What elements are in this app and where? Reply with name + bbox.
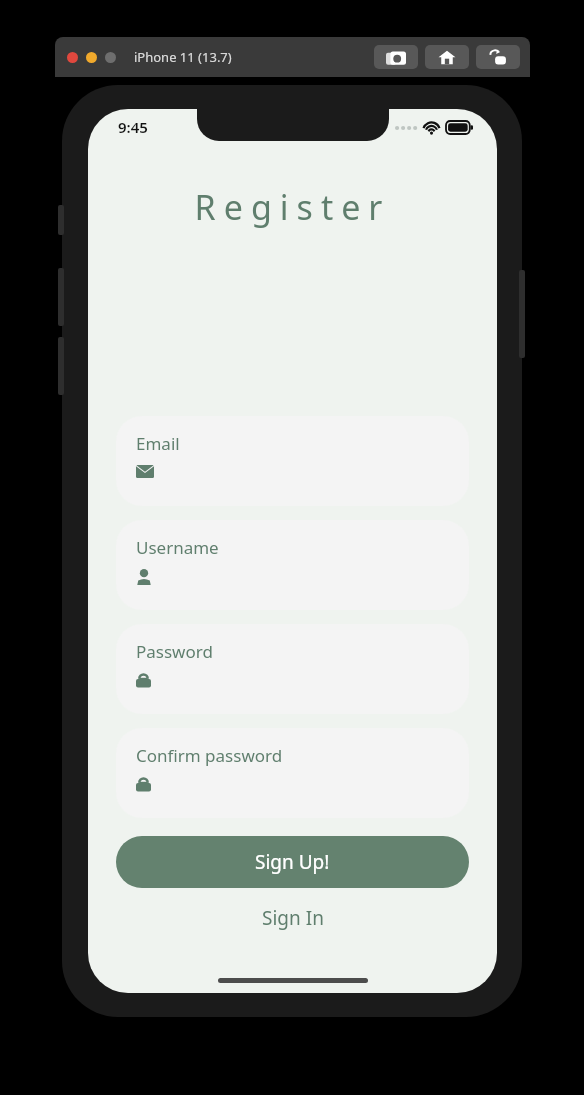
button[interactable]: Simulator control (374, 45, 418, 69)
button[interactable]: Password (116, 624, 469, 714)
staticText: Register (88, 184, 497, 230)
staticText: 9:45 (118, 117, 148, 137)
button[interactable]: Username (116, 520, 469, 610)
staticText: Sign Up! (255, 849, 330, 875)
staticText: Password (136, 640, 213, 663)
button[interactable]: Sign Up! (116, 836, 469, 888)
staticText: Confirm password (136, 744, 283, 767)
staticText: Username (136, 536, 219, 559)
button[interactable]: Simulator control (476, 45, 520, 69)
staticText: iPhone 11 (13.7) (134, 48, 232, 66)
button[interactable]: Confirm password (116, 728, 469, 818)
button[interactable]: Email (116, 416, 469, 506)
staticText: Email (136, 432, 180, 455)
staticText: Sign In (262, 905, 324, 931)
button[interactable]: Simulator control (425, 45, 469, 69)
button[interactable]: Sign In (88, 898, 497, 938)
